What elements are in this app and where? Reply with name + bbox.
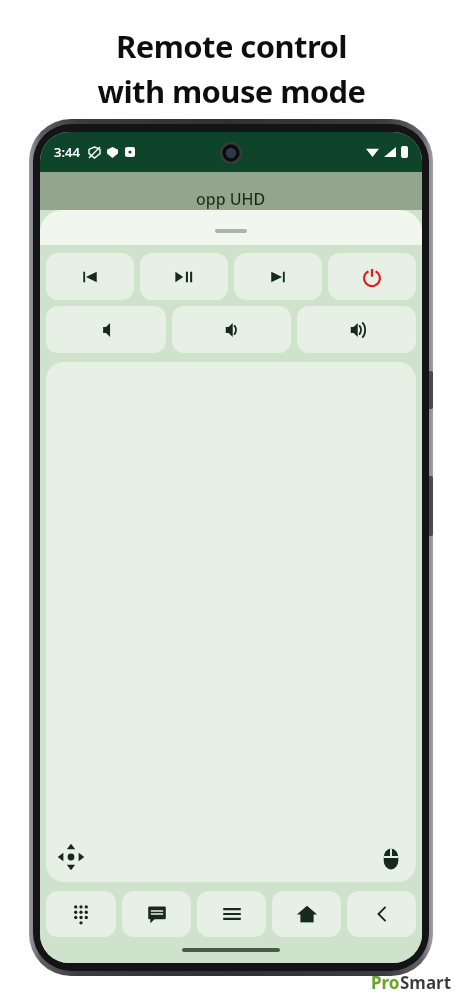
- button[interactable]: Previous: [46, 253, 134, 300]
- button[interactable]: Volume up: [297, 306, 416, 353]
- button[interactable]: Move mode: [58, 844, 84, 870]
- staticText: with mouse mode: [97, 70, 366, 112]
- staticText: Smart: [400, 971, 452, 994]
- staticText: Pro: [371, 971, 400, 994]
- staticText: 3:44: [54, 143, 80, 161]
- button[interactable]: Next: [234, 253, 322, 300]
- button[interactable]: Mouse mode: [378, 846, 404, 872]
- staticText: opp UHD: [196, 188, 266, 210]
- button[interactable]: Home: [272, 891, 341, 937]
- button[interactable]: Keyboard: [122, 891, 191, 937]
- button[interactable]: Play pause: [140, 253, 228, 300]
- button[interactable]: Dialpad: [46, 891, 116, 937]
- button[interactable]: Volume down: [172, 306, 291, 353]
- staticText: Remote control: [116, 25, 347, 67]
- button[interactable]: Move mode: [46, 362, 416, 882]
- button[interactable]: Back: [347, 891, 416, 937]
- button[interactable]: Power: [328, 253, 416, 300]
- button[interactable]: Mute: [46, 306, 166, 353]
- button[interactable]: Menu: [197, 891, 266, 937]
